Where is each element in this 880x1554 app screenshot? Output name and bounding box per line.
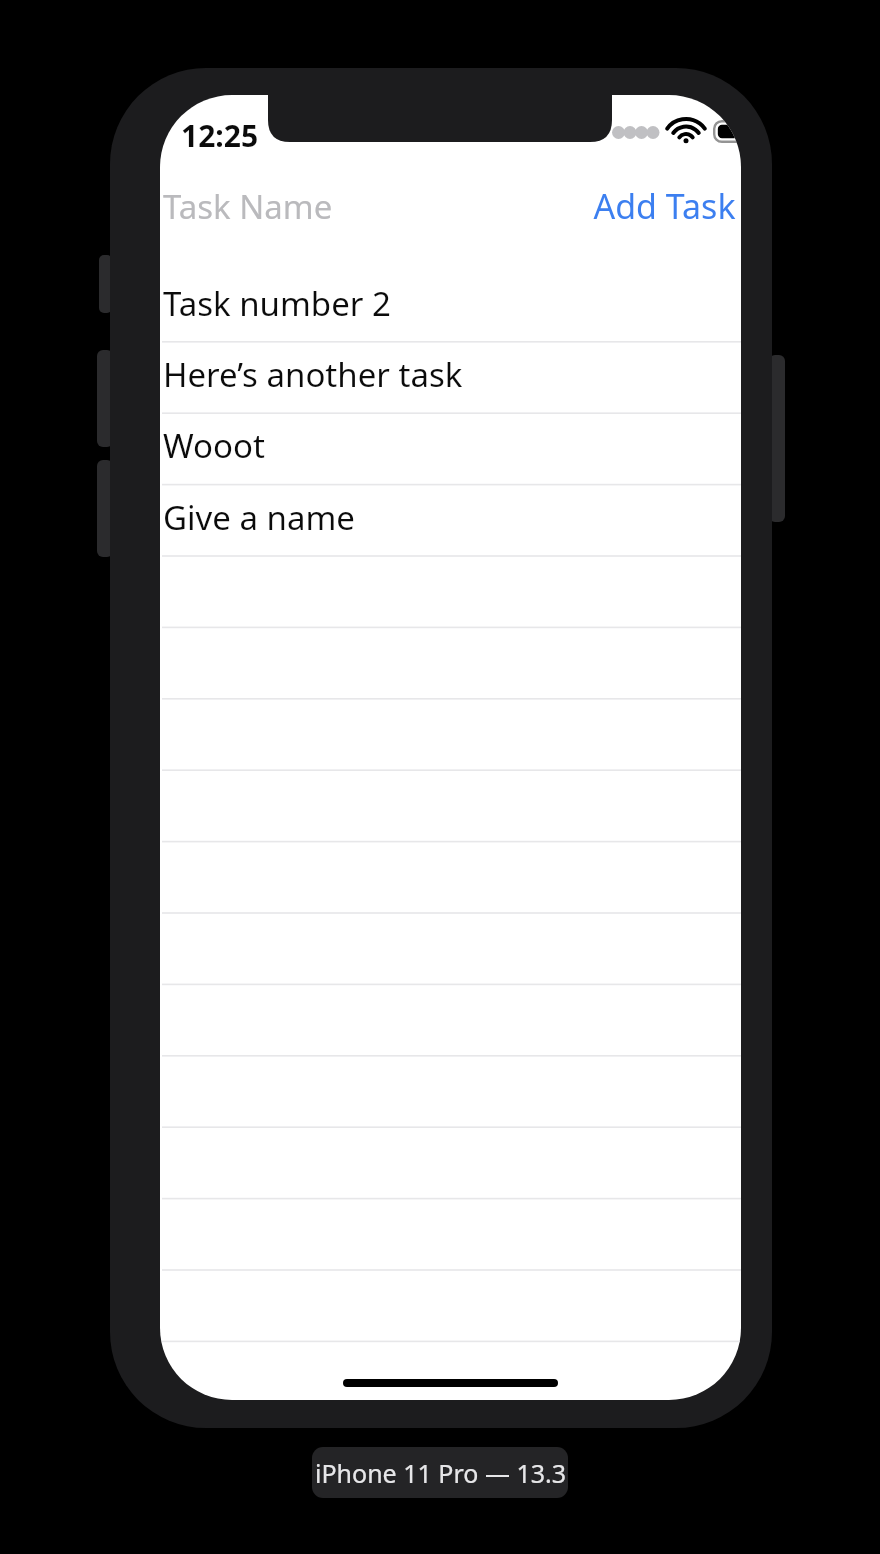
other: Volume down	[97, 460, 113, 557]
button[interactable]: Give a name	[160, 484, 741, 555]
button[interactable]: Here’s another task	[160, 341, 741, 412]
button[interactable]: Wooot	[160, 412, 741, 483]
other: Silent switch	[99, 255, 112, 313]
staticText: Here’s another task	[163, 352, 463, 397]
staticText: Task number 2	[163, 281, 391, 326]
staticText: 12:25	[181, 115, 259, 156]
staticText: Give a name	[163, 495, 355, 540]
staticText: Add Task	[593, 183, 736, 229]
other: Power	[769, 355, 785, 522]
button[interactable]: Task number 2	[160, 270, 741, 341]
other: Volume up	[97, 350, 113, 447]
button[interactable]: Add Task	[588, 171, 740, 241]
button[interactable]: iPhone 11 Pro — 13.3	[312, 1447, 568, 1498]
staticText: Wooot	[163, 423, 265, 468]
button[interactable]: Task Name	[160, 171, 480, 241]
staticText: iPhone 11 Pro — 13.3	[315, 1456, 566, 1490]
staticText: Task Name	[163, 184, 333, 229]
